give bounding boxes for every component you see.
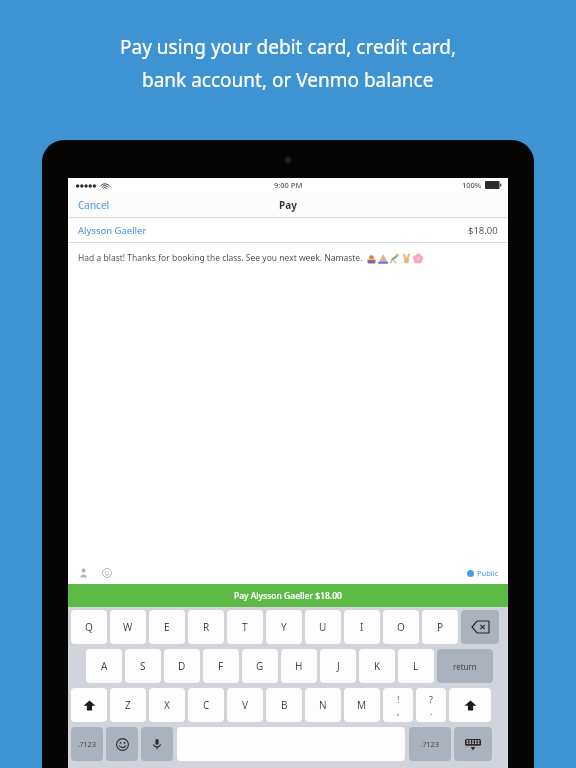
button[interactable]: M: [344, 688, 380, 722]
staticText: N: [319, 698, 327, 712]
button[interactable]: O: [383, 610, 419, 644]
staticText: Z: [125, 698, 131, 712]
button[interactable]: P: [422, 610, 458, 644]
staticText: !: [397, 693, 400, 705]
staticText: return: [453, 661, 477, 672]
button[interactable]: Alysson Gaeller: [68, 218, 508, 242]
staticText: ?: [429, 693, 433, 705]
button[interactable]: Had a blast! Thanks for booking the clas…: [68, 243, 508, 561]
button[interactable]: B: [266, 688, 302, 722]
button[interactable]: Q: [71, 610, 107, 644]
staticText: .: [430, 705, 433, 717]
staticText: U: [319, 620, 327, 634]
button[interactable]: X: [149, 688, 185, 722]
button[interactable]: U: [305, 610, 341, 644]
button[interactable]: T: [227, 610, 263, 644]
button[interactable]: H: [281, 649, 317, 683]
staticText: V: [242, 698, 248, 712]
staticText: .?123: [421, 739, 440, 749]
button[interactable]: ?: [416, 688, 446, 722]
staticText: S: [140, 659, 146, 673]
button[interactable]: Hide keyboard: [454, 727, 492, 761]
staticText: J: [337, 659, 340, 673]
staticText: R: [203, 620, 210, 634]
button[interactable]: S: [125, 649, 161, 683]
staticText: A: [101, 659, 108, 673]
staticText: M: [357, 698, 367, 712]
staticText: H: [295, 659, 303, 673]
staticText: K: [374, 659, 381, 673]
button[interactable]: F: [203, 649, 239, 683]
staticText: D: [178, 659, 186, 673]
staticText: L: [413, 659, 419, 673]
button[interactable]: V: [227, 688, 263, 722]
staticText: $18.00: [468, 224, 498, 237]
staticText: Had a blast! Thanks for booking the clas…: [78, 252, 363, 264]
staticText: Alysson Gaeller: [78, 224, 147, 237]
staticText: Pay: [279, 198, 297, 212]
button[interactable]: Cancel: [68, 194, 120, 216]
button[interactable]: L: [398, 649, 434, 683]
staticText: X: [164, 698, 170, 712]
staticText: 9:00 PM: [274, 180, 303, 190]
staticText: Cancel: [78, 198, 110, 212]
staticText: ,: [397, 705, 400, 717]
staticText: P: [437, 620, 444, 634]
staticText: F: [218, 659, 224, 673]
button[interactable]: Public: [458, 565, 508, 581]
button[interactable]: Backspace: [461, 610, 499, 644]
button[interactable]: I: [344, 610, 380, 644]
staticText: Y: [281, 620, 287, 634]
button[interactable]: Shift: [449, 688, 491, 722]
staticText: I: [360, 620, 364, 634]
staticText: B: [281, 698, 288, 712]
staticText: 100%: [462, 180, 482, 190]
button[interactable]: Y: [266, 610, 302, 644]
staticText: bank account, or Venmo balance: [142, 67, 434, 93]
staticText: G: [256, 659, 264, 673]
staticText: E: [164, 620, 170, 634]
button[interactable]: Shift: [71, 688, 107, 722]
staticText: Pay Alysson Gaeller $18.00: [234, 590, 342, 602]
button[interactable]: Add person: [77, 566, 91, 580]
staticText: C: [203, 698, 210, 712]
button[interactable]: Emoji keyboard: [106, 727, 138, 761]
button[interactable]: .?123: [409, 727, 451, 761]
button[interactable]: N: [305, 688, 341, 722]
button[interactable]: Dictation: [141, 727, 173, 761]
staticText: Pay using your debit card, credit card,: [120, 34, 457, 60]
button[interactable]: !: [383, 688, 413, 722]
button[interactable]: Z: [110, 688, 146, 722]
button[interactable]: C: [188, 688, 224, 722]
button[interactable]: D: [164, 649, 200, 683]
button[interactable]: return: [437, 649, 493, 683]
button[interactable]: W: [110, 610, 146, 644]
button[interactable]: .?123: [71, 727, 103, 761]
button[interactable]: G: [242, 649, 278, 683]
button[interactable]: K: [359, 649, 395, 683]
button[interactable]: A: [86, 649, 122, 683]
staticText: W: [123, 620, 133, 634]
staticText: Q: [85, 620, 93, 634]
button[interactable]: R: [188, 610, 224, 644]
staticText: Public: [477, 568, 499, 578]
button[interactable]: E: [149, 610, 185, 644]
staticText: .?123: [78, 739, 97, 749]
button[interactable]: J: [320, 649, 356, 683]
staticText: O: [397, 620, 405, 634]
button[interactable]: Emoji: [100, 566, 114, 580]
staticText: T: [242, 620, 248, 634]
button[interactable]: Pay Alysson Gaeller $18.00: [68, 584, 508, 607]
